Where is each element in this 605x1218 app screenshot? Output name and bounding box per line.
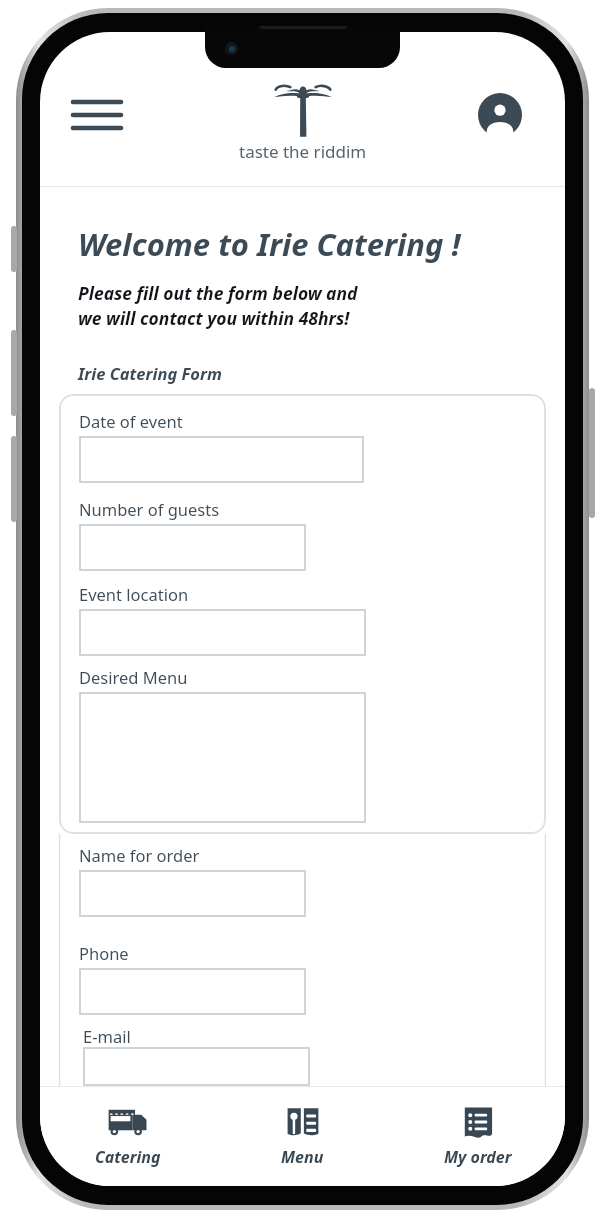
staticText: Event location [79, 583, 189, 605]
staticText: Desired Menu [79, 666, 188, 688]
staticText: Irie Catering Form [78, 362, 222, 384]
button[interactable]: Catering [40, 1086, 215, 1186]
staticText: Please fill out the form below and [78, 281, 358, 305]
staticText: Date of event [79, 410, 183, 432]
staticText: taste the riddim [239, 140, 367, 163]
staticText: E-mail [83, 1025, 131, 1047]
button[interactable]: Menu [66, 89, 128, 141]
button[interactable] [79, 692, 366, 823]
staticText: Name for order [79, 844, 200, 866]
button[interactable] [79, 436, 364, 483]
staticText: Menu [281, 1146, 324, 1168]
staticText: we will contact you within 48hrs! [78, 306, 350, 330]
staticText: My order [444, 1146, 512, 1168]
staticText: Phone [79, 942, 129, 964]
staticText: Welcome to Irie Catering ! [78, 223, 461, 265]
button[interactable]: Account [474, 89, 526, 141]
button[interactable]: Menu [215, 1086, 390, 1186]
button[interactable]: My order [390, 1086, 565, 1186]
button[interactable] [79, 524, 306, 571]
button[interactable] [79, 609, 366, 656]
staticText: Catering [95, 1146, 161, 1168]
button[interactable] [79, 968, 306, 1015]
button[interactable] [79, 870, 306, 917]
button[interactable] [83, 1047, 310, 1086]
staticText: Number of guests [79, 498, 220, 520]
